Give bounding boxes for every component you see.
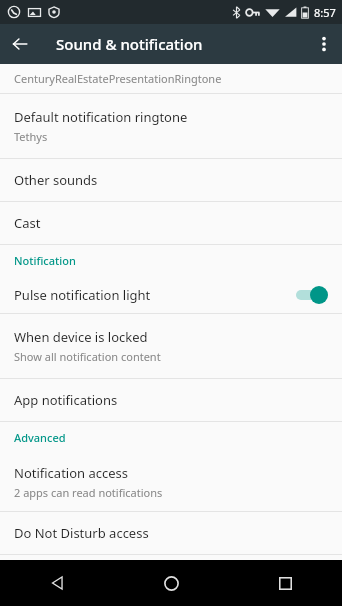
staticText: When device is locked (14, 328, 148, 346)
button[interactable]: Recent apps (228, 560, 342, 606)
button[interactable]: Back (0, 24, 40, 64)
button[interactable]: Other sounds (0, 159, 342, 201)
button[interactable]: CenturyRealEstatePresentationRingtone (0, 64, 342, 93)
button[interactable]: Home (114, 560, 228, 606)
staticText: Show all notification content (14, 349, 161, 364)
staticText: CenturyRealEstatePresentationRingtone (14, 71, 222, 86)
staticText: Notification access (14, 464, 129, 482)
button[interactable]: Pulse notification light (0, 276, 342, 313)
staticText: 8:57 (314, 5, 336, 20)
staticText: Cast (14, 214, 41, 232)
button[interactable]: More options (306, 24, 342, 64)
button[interactable]: Default notification ringtone (0, 94, 342, 158)
staticText: Do Not Disturb access (14, 524, 149, 542)
staticText: Sound & notification (56, 34, 306, 54)
staticText: Default notification ringtone (14, 108, 188, 126)
staticText: Advanced (14, 430, 66, 445)
staticText: Notification (14, 253, 76, 268)
button[interactable]: When device is locked (0, 314, 342, 378)
staticText: Other sounds (14, 171, 98, 189)
staticText: Pulse notification light (14, 286, 294, 304)
button[interactable]: Notification access (0, 453, 342, 511)
button[interactable]: Cast (0, 202, 342, 244)
staticText: Tethys (14, 129, 48, 144)
button[interactable]: App notifications (0, 379, 342, 421)
button[interactable]: Do Not Disturb access (0, 512, 342, 554)
staticText: 2 apps can read notifications (14, 485, 163, 500)
staticText: App notifications (14, 391, 118, 409)
button[interactable]: Back (0, 560, 114, 606)
